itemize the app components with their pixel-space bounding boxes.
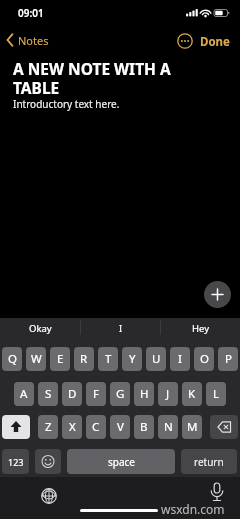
button[interactable]: U (146, 347, 166, 371)
button[interactable]: Y (122, 347, 142, 371)
button[interactable] (210, 415, 238, 439)
button[interactable]: space (67, 449, 175, 474)
staticText: Z (45, 419, 52, 435)
button[interactable]: Hey (192, 322, 210, 335)
button[interactable] (204, 281, 231, 308)
staticText: W (31, 351, 42, 367)
staticText: B (140, 419, 148, 435)
staticText: 123 (8, 456, 24, 468)
button[interactable]: F (86, 382, 106, 406)
staticText: H (140, 386, 149, 402)
staticText: R (80, 351, 88, 367)
button[interactable]: I (170, 347, 190, 371)
staticText: A NEW NOTE WITH A TABLE (13, 58, 171, 98)
staticText: 09:01 (18, 6, 44, 20)
staticText: N (164, 419, 173, 435)
staticText: return (194, 455, 224, 469)
button[interactable]: K (182, 382, 202, 406)
button[interactable] (209, 482, 225, 504)
button[interactable]: Done (200, 34, 230, 50)
button[interactable]: N (158, 415, 178, 439)
staticText: Q (8, 351, 17, 367)
button[interactable]: J (158, 382, 178, 406)
button[interactable]: E (50, 347, 70, 371)
staticText: space (108, 455, 135, 469)
button[interactable]: D (62, 382, 82, 406)
button[interactable]: W (26, 347, 46, 371)
button[interactable]: T (98, 347, 118, 371)
button[interactable]: A (14, 382, 34, 406)
button[interactable]: M (182, 415, 202, 439)
button[interactable]: L (206, 382, 226, 406)
button[interactable]: Notes (5, 31, 49, 49)
staticText: U (152, 351, 161, 367)
button[interactable]: Okay (29, 322, 52, 335)
button[interactable]: G (110, 382, 130, 406)
staticText: D (68, 386, 77, 402)
button[interactable]: X (62, 415, 82, 439)
button[interactable]: H (134, 382, 154, 406)
button[interactable]: 123 (2, 449, 29, 474)
button[interactable]: C (86, 415, 106, 439)
staticText: J (166, 386, 170, 402)
button[interactable]: Z (38, 415, 58, 439)
staticText: M (187, 419, 198, 435)
staticText: F (93, 386, 99, 402)
button[interactable] (35, 449, 61, 474)
button[interactable]: I (119, 322, 123, 335)
button[interactable]: V (110, 415, 130, 439)
button[interactable]: P (218, 347, 238, 371)
staticText: P (225, 351, 232, 367)
button[interactable]: S (38, 382, 58, 406)
staticText: S (45, 386, 52, 402)
staticText: V (117, 419, 124, 435)
staticText: Notes (18, 33, 49, 48)
staticText: Y (129, 351, 136, 367)
staticText: E (57, 351, 64, 367)
staticText: G (116, 386, 125, 402)
staticText: wsxdn.com (161, 501, 225, 517)
staticText: I (178, 351, 182, 367)
staticText: L (213, 386, 220, 402)
button[interactable]: R (74, 347, 94, 371)
staticText: X (69, 419, 76, 435)
button[interactable]: Q (2, 347, 22, 371)
button[interactable] (177, 33, 193, 49)
button[interactable]: return (181, 449, 237, 474)
staticText: O (200, 351, 209, 367)
staticText: A (20, 386, 28, 402)
staticText: K (188, 386, 196, 402)
staticText: Introductory text here. (13, 97, 120, 111)
button[interactable]: B (134, 415, 154, 439)
button[interactable] (2, 415, 30, 439)
staticText: T (105, 351, 112, 367)
staticText: C (92, 419, 100, 435)
button[interactable] (41, 488, 57, 504)
button[interactable]: O (194, 347, 214, 371)
